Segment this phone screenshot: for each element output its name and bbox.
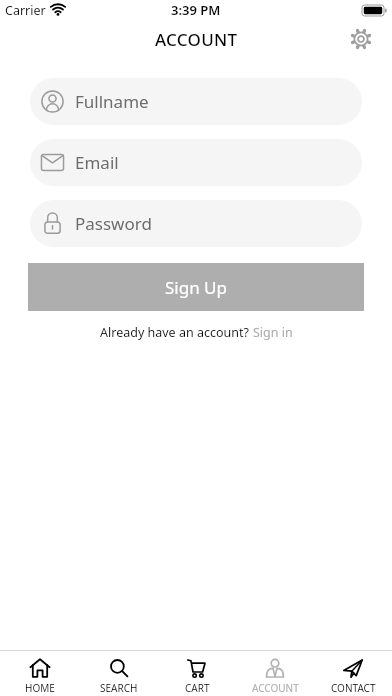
staticText: Sign in: [253, 324, 293, 341]
staticText: Carrier: [5, 2, 46, 19]
button[interactable]: Sign in: [253, 324, 293, 341]
button[interactable]: Email: [30, 139, 362, 186]
button[interactable]: HOME: [0, 651, 79, 696]
button[interactable]: Password: [30, 200, 362, 247]
button[interactable]: CART: [158, 651, 236, 696]
staticText: Password: [75, 212, 152, 235]
staticText: Already have an account?: [100, 324, 253, 341]
button[interactable]: SEARCH: [79, 651, 158, 696]
button[interactable]: Fullname: [30, 78, 362, 125]
staticText: Sign Up: [165, 276, 227, 299]
staticText: ACCOUNT: [155, 28, 238, 51]
button[interactable]: [345, 23, 377, 55]
button[interactable]: ACCOUNT: [236, 651, 314, 696]
staticText: Fullname: [75, 90, 149, 113]
staticText: CART: [185, 681, 210, 695]
staticText: 3:39 PM: [171, 1, 221, 19]
staticText: CONTACT: [331, 681, 376, 695]
staticText: Email: [75, 151, 119, 174]
staticText: ACCOUNT: [252, 681, 299, 695]
button[interactable]: Sign Up: [28, 263, 364, 311]
staticText: SEARCH: [100, 681, 138, 695]
button[interactable]: CONTACT: [314, 651, 392, 696]
staticText: HOME: [25, 681, 55, 695]
